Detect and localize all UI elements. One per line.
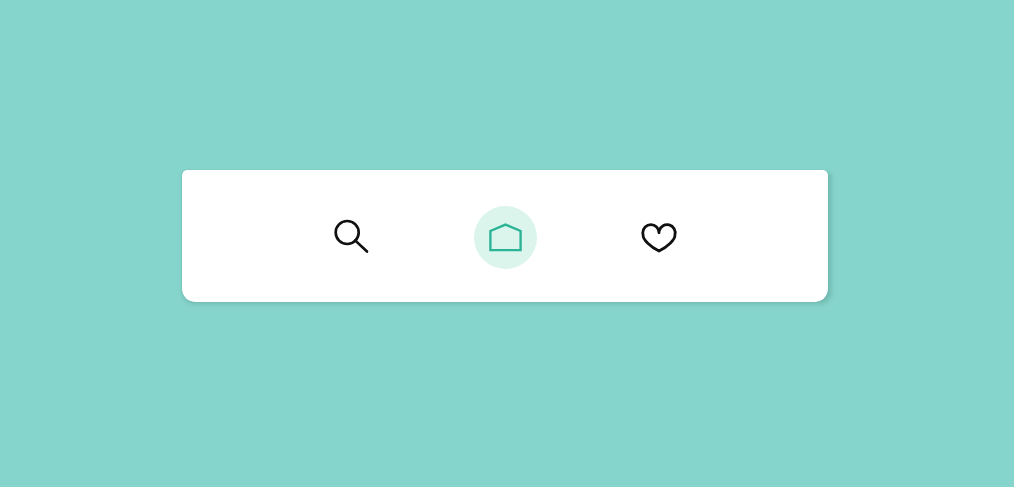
- button[interactable]: Search: [182, 170, 426, 302]
- button[interactable]: Favorites: [585, 170, 828, 302]
- button[interactable]: Home: [426, 170, 585, 302]
